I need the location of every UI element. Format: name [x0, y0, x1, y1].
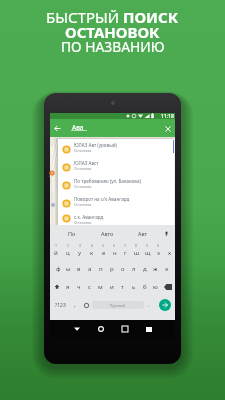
button[interactable]: в — [73, 260, 84, 278]
button[interactable]: ф — [53, 260, 63, 278]
staticText: БЫСТРЫЙ — [46, 7, 123, 27]
staticText: п — [99, 265, 103, 273]
staticText: к — [90, 249, 94, 257]
button[interactable]: а — [84, 260, 95, 278]
staticText: ЮЛАЗ Авст — [74, 160, 99, 166]
staticText: р — [110, 265, 114, 273]
staticText: 8 — [135, 243, 138, 248]
button[interactable]: л — [128, 260, 139, 278]
button[interactable]: ЮЛАЗ Авст — [58, 158, 174, 176]
staticText: я — [66, 283, 70, 291]
staticText: н — [113, 249, 117, 257]
button[interactable]: Удалить — [161, 278, 175, 296]
staticText: ПОИСК — [123, 7, 179, 27]
button[interactable]: э — [161, 260, 172, 278]
staticText: 4 — [91, 243, 94, 248]
staticText: т — [121, 283, 124, 291]
button[interactable]: с — [84, 278, 95, 296]
staticText: щ — [145, 249, 151, 257]
staticText: , — [74, 301, 76, 309]
staticText: . — [148, 301, 150, 309]
button[interactable]: 4 — [86, 242, 98, 260]
button[interactable]: Эмодзи — [80, 296, 92, 314]
button[interactable]: По — [54, 225, 89, 242]
staticText: а — [88, 265, 92, 273]
button[interactable]: ч — [73, 278, 84, 296]
staticText: ф — [56, 265, 61, 273]
staticText: 9 — [146, 243, 149, 248]
staticText: Поворот на с/х Авангард — [74, 196, 130, 202]
staticText: ч — [77, 283, 81, 291]
button[interactable]: 8 — [131, 242, 142, 260]
button[interactable]: 6 — [109, 242, 120, 260]
button[interactable]: я — [63, 278, 73, 296]
button[interactable]: ю — [150, 278, 161, 296]
button[interactable]: Последние приложения — [113, 320, 137, 338]
button[interactable]: ь — [128, 278, 139, 296]
staticText: б — [143, 283, 147, 291]
staticText: л — [132, 265, 136, 273]
button[interactable]: Главный экран — [89, 320, 113, 338]
button[interactable]: Поиск — [159, 299, 171, 311]
button[interactable]: р — [106, 260, 117, 278]
button[interactable]: 5 — [98, 242, 109, 260]
staticText: 0 — [157, 243, 160, 248]
button[interactable]: ?123 — [50, 296, 70, 314]
button[interactable]: . — [144, 296, 154, 314]
button[interactable]: и — [106, 278, 117, 296]
button[interactable]: Авт — [125, 225, 161, 242]
staticText: в — [77, 265, 81, 273]
button[interactable]: х — [164, 242, 175, 260]
button[interactable]: 0 — [153, 242, 164, 260]
button[interactable]: Назад — [65, 320, 89, 338]
staticText: ?123 — [55, 302, 66, 309]
button[interactable]: Поворот на с/х Авангард — [58, 194, 174, 212]
button[interactable]: п — [95, 260, 106, 278]
button[interactable]: Shift — [50, 278, 63, 296]
button[interactable]: Клавиатура — [137, 320, 161, 338]
staticText: 2 — [67, 243, 70, 248]
button[interactable]: 9 — [142, 242, 153, 260]
staticText: Остановка — [74, 166, 92, 171]
button[interactable]: 3 — [74, 242, 86, 260]
button[interactable]: Назад — [52, 123, 63, 134]
staticText: ПО НАЗВАНИЮ — [61, 37, 165, 56]
staticText: ю — [153, 283, 158, 291]
button[interactable]: 1 — [50, 242, 62, 260]
button[interactable]: Авто — [89, 225, 125, 242]
button[interactable]: б — [139, 278, 150, 296]
button[interactable]: т — [117, 278, 128, 296]
button[interactable]: ЮЛАЗ Авт (уровый) — [58, 140, 174, 158]
staticText: ь — [132, 283, 136, 291]
button[interactable]: Голосовой ввод — [161, 225, 171, 242]
button[interactable]: , — [70, 296, 80, 314]
staticText: х — [168, 249, 172, 257]
button[interactable]: Русский — [92, 301, 144, 309]
staticText: 6 — [113, 243, 116, 248]
staticText: з — [157, 249, 160, 257]
button[interactable]: 7 — [120, 242, 131, 260]
button[interactable]: ж — [150, 260, 161, 278]
staticText: Остановка — [74, 148, 92, 153]
staticText: с.х. Авангард — [74, 214, 104, 220]
staticText: ы — [66, 265, 71, 273]
staticText: 7 — [124, 243, 127, 248]
staticText: д — [143, 265, 147, 273]
staticText: Ава — [72, 123, 84, 132]
button[interactable]: ы — [63, 260, 73, 278]
button[interactable]: м — [95, 278, 106, 296]
staticText: у — [78, 249, 82, 257]
staticText: 11:18 — [161, 113, 174, 119]
staticText: г — [124, 249, 127, 257]
staticText: ЮЛАЗ Авт (уровый) — [74, 142, 117, 148]
button[interactable]: 2 — [62, 242, 74, 260]
staticText: ж — [153, 265, 158, 273]
staticText: м — [98, 283, 103, 291]
button[interactable]: с.х. Авангард — [58, 212, 174, 225]
button[interactable]: о — [117, 260, 128, 278]
staticText: 5 — [102, 243, 105, 248]
button[interactable]: д — [139, 260, 150, 278]
staticText: ОСТАНОВОК — [65, 22, 160, 42]
button[interactable]: По требованию (ул. Баканова) — [58, 176, 174, 194]
button[interactable]: Очистить — [162, 123, 173, 134]
